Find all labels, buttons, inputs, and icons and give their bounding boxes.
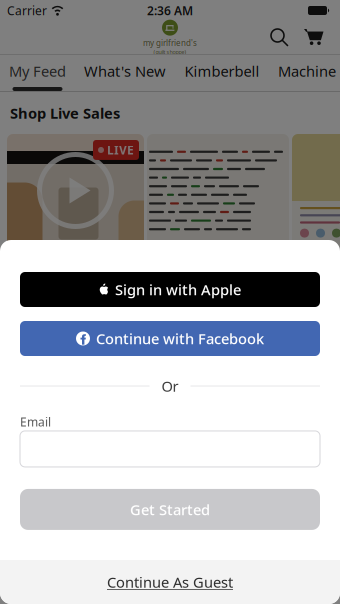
staticText: What's New <box>84 61 166 81</box>
staticText: Sign in with Apple <box>115 280 241 299</box>
staticText: Continue with Facebook <box>96 329 264 348</box>
button[interactable]: Continue As Guest <box>0 560 340 604</box>
button[interactable]: Get Started <box>20 489 320 530</box>
staticText: LIVE <box>107 142 134 158</box>
button[interactable]: Shopping cart <box>302 24 326 51</box>
button[interactable]: Machine Embroidery <box>269 55 340 91</box>
staticText: (quilt shoppe) <box>153 48 186 55</box>
staticText: Continue As Guest <box>107 572 233 592</box>
staticText: My Feed <box>9 61 66 81</box>
staticText: Machine Embroidery <box>278 61 340 81</box>
staticText: Or <box>161 376 178 396</box>
button[interactable]: Search <box>267 24 292 51</box>
button[interactable]: What's New <box>75 55 175 91</box>
staticText: 2:36 AM <box>147 2 193 18</box>
button[interactable]: Continue with Facebook <box>20 321 320 356</box>
button[interactable]: Kimberbell <box>175 55 269 91</box>
staticText: Shop Live Sales <box>10 103 120 123</box>
staticText: Get Started <box>130 500 210 519</box>
button[interactable]: Sign in with Apple <box>20 272 320 307</box>
staticText: Kimberbell <box>184 61 259 81</box>
staticText: Email <box>20 414 51 430</box>
button[interactable]: My Feed <box>0 55 75 91</box>
staticText: Carrier <box>7 2 47 18</box>
staticText: my girlfriend's <box>143 38 197 48</box>
